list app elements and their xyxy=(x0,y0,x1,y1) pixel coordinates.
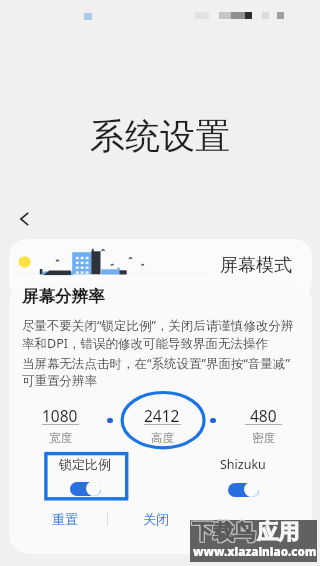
staticText: 1080 xyxy=(42,405,78,426)
button[interactable]: Shizuku xyxy=(208,456,278,497)
button[interactable]: 屏幕模式 xyxy=(9,239,312,299)
staticText: 高度 xyxy=(151,431,174,445)
staticText: 屏幕分辨率 xyxy=(22,286,105,307)
staticText: 锁定比例 xyxy=(59,456,111,472)
staticText: 关闭 xyxy=(143,511,169,527)
staticText: 下载鸟 xyxy=(191,520,254,546)
button[interactable]: 重置 xyxy=(17,500,113,538)
staticText: 下载鸟 xyxy=(191,518,254,544)
staticText: 宽度 xyxy=(49,431,72,445)
staticText: 密度 xyxy=(252,431,275,445)
staticText: 屏幕模式 xyxy=(220,254,292,277)
staticText: www.xlazainiao.com xyxy=(193,544,317,560)
staticText: 2412 xyxy=(144,405,180,426)
staticText: 下载鸟 xyxy=(193,520,256,546)
staticText: 尽量不要关闭“锁定比例”，关闭后请谨慎修改分辨率和DPI，错误的修改可能导致界面… xyxy=(22,317,299,352)
staticText: 下载鸟 xyxy=(193,518,256,544)
button[interactable]: 1080 xyxy=(36,405,84,445)
button[interactable]: 2412 xyxy=(138,405,186,445)
button[interactable]: 关闭 xyxy=(108,500,204,538)
staticText: 下载鸟 xyxy=(192,519,255,545)
staticText: 480 xyxy=(250,405,277,426)
staticText: Shizuku xyxy=(220,456,266,473)
button[interactable]: 480 xyxy=(239,405,287,445)
staticText: 应用 xyxy=(257,519,299,545)
button[interactable]: 锁定比例 xyxy=(50,456,120,496)
staticText: 当屏幕无法点击时，在“系统设置”界面按“音量减” 可重置分辨率 xyxy=(22,355,312,389)
staticText: 系统设置 xyxy=(0,114,320,158)
button[interactable]: Back xyxy=(6,201,42,237)
staticText: 重置 xyxy=(52,511,78,527)
